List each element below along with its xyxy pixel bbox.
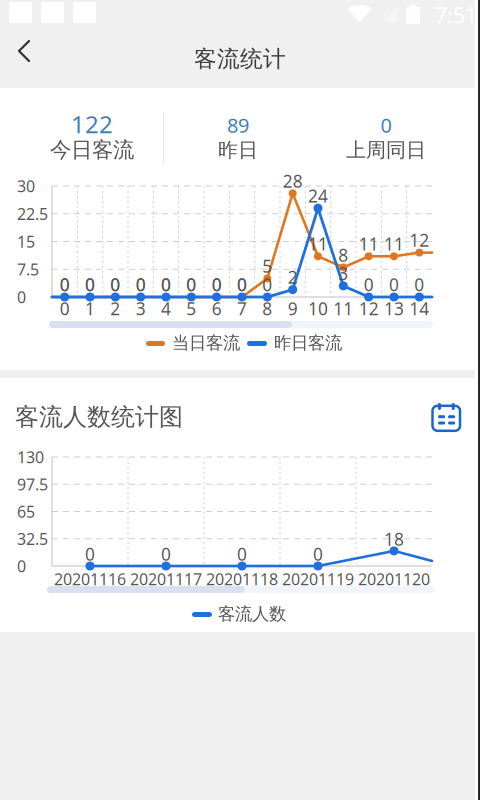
staticText: 7 [237,297,247,320]
staticText: 0 [161,542,171,566]
staticText: 昨日客流 [274,332,342,354]
staticText: 5 [186,297,196,320]
staticText: 0 [380,111,391,139]
staticText: 10 [308,297,328,320]
staticText: 0 [17,286,26,308]
staticText: 0 [186,273,196,296]
staticText: 89 [227,111,249,139]
staticText: 8 [338,243,348,267]
staticText: 0 [110,273,120,296]
staticText: 6 [212,297,222,320]
staticText: 22.5 [17,203,48,225]
staticText: 20201117 [130,568,202,590]
staticText: 0 [17,555,26,577]
staticText: 0 [60,273,70,296]
staticText: 0 [85,273,95,296]
staticText: 24 [308,184,328,207]
staticText: 7.5 [17,258,39,280]
staticText: 0 [60,273,70,296]
staticText: 0 [237,273,247,296]
staticText: 12 [359,297,379,320]
staticText: 20201118 [206,568,278,590]
staticText: 30 [17,175,35,197]
staticText: 0 [212,273,222,296]
staticText: 3 [136,297,146,320]
staticText: 0 [85,273,95,296]
staticText: 4 [161,297,171,320]
staticText: 0 [85,542,95,566]
staticText: 32.5 [17,528,48,550]
staticText: 0 [262,273,272,296]
staticText: 0 [136,273,146,296]
staticText: 2 [110,297,120,320]
staticText: 0 [212,273,222,296]
staticText: 0 [389,273,399,296]
staticText: 2 [288,265,298,289]
staticText: 0 [136,273,146,296]
staticText: 8 [262,297,272,320]
staticText: 0 [364,273,374,296]
staticText: 上周同日 [346,137,426,163]
button[interactable]: Select date [0,0,480,800]
staticText: 0 [161,273,171,296]
staticText: 7:51 [435,0,477,30]
staticText: 11 [359,232,379,256]
staticText: 今日客流 [50,137,134,163]
staticText: 昨日 [218,137,258,163]
staticText: 0 [186,273,196,296]
staticText: 122 [71,108,113,140]
staticText: 5 [262,254,272,278]
staticText: 13 [384,297,404,320]
staticText: 客流人数统计图 [15,402,183,432]
staticText: 0 [313,542,323,566]
staticText: 客流统计 [194,45,286,73]
button[interactable]: Back [0,0,480,800]
staticText: 18 [384,527,404,551]
staticText: 15 [17,231,35,252]
staticText: 97.5 [17,473,48,495]
staticText: 11 [384,232,404,256]
staticText: 28 [283,169,303,193]
staticText: 0 [237,542,247,566]
staticText: 11 [308,232,328,256]
staticText: 0 [237,273,247,296]
staticText: 客流人数 [218,603,286,625]
staticText: 12 [409,228,429,252]
staticText: 0 [161,273,171,296]
staticText: 1 [85,297,95,320]
staticText: 3 [338,262,348,285]
staticText: 0 [60,297,70,320]
staticText: 65 [17,501,35,522]
staticText: 0 [110,273,120,296]
staticText: 当日客流 [172,332,240,354]
staticText: 11 [333,297,353,320]
staticText: 9 [288,297,298,320]
staticText: 0 [414,273,424,296]
staticText: 130 [17,446,44,468]
staticText: 20201120 [358,568,430,590]
staticText: 20201119 [282,568,354,590]
staticText: 20201116 [54,568,126,590]
staticText: 14 [409,297,429,320]
